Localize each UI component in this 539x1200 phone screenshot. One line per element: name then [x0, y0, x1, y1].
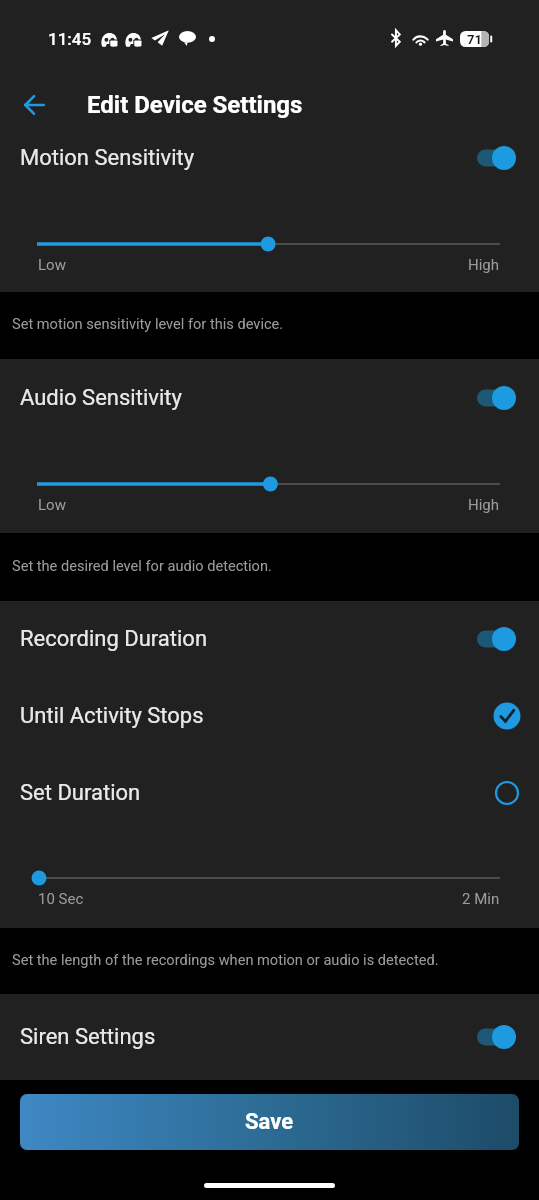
- staticText: High: [468, 256, 500, 274]
- staticText: 11:45: [48, 29, 92, 49]
- button[interactable]: Until Activity Stops: [0, 677, 539, 754]
- button[interactable]: Save: [20, 1094, 519, 1150]
- staticText: Set Duration: [20, 780, 141, 806]
- staticText: 2 Min: [462, 890, 500, 908]
- button[interactable]: Back: [10, 76, 59, 134]
- staticText: 10 Sec: [38, 890, 84, 908]
- staticText: 71: [467, 32, 482, 47]
- staticText: Edit Device Settings: [87, 91, 303, 119]
- staticText: Set motion sensitivity level for this de…: [12, 315, 284, 332]
- staticText: Set the desired level for audio detectio…: [12, 557, 272, 574]
- button[interactable]: Recording Duration: [0, 601, 539, 677]
- button[interactable]: Siren Settings: [0, 994, 539, 1080]
- staticText: Siren Settings: [20, 1024, 156, 1050]
- button[interactable]: Motion Sensitivity: [0, 134, 539, 182]
- staticText: Low: [38, 256, 66, 274]
- button[interactable]: Audio Sensitivity: [0, 359, 539, 437]
- staticText: Low: [38, 496, 66, 514]
- staticText: Motion Sensitivity: [20, 145, 195, 171]
- staticText: Set the length of the recordings when mo…: [12, 951, 439, 968]
- staticText: High: [468, 496, 500, 514]
- staticText: Recording Duration: [20, 626, 208, 652]
- staticText: Until Activity Stops: [20, 703, 204, 729]
- staticText: Audio Sensitivity: [20, 385, 182, 411]
- button[interactable]: Set Duration: [0, 754, 539, 831]
- staticText: Save: [245, 1109, 294, 1135]
